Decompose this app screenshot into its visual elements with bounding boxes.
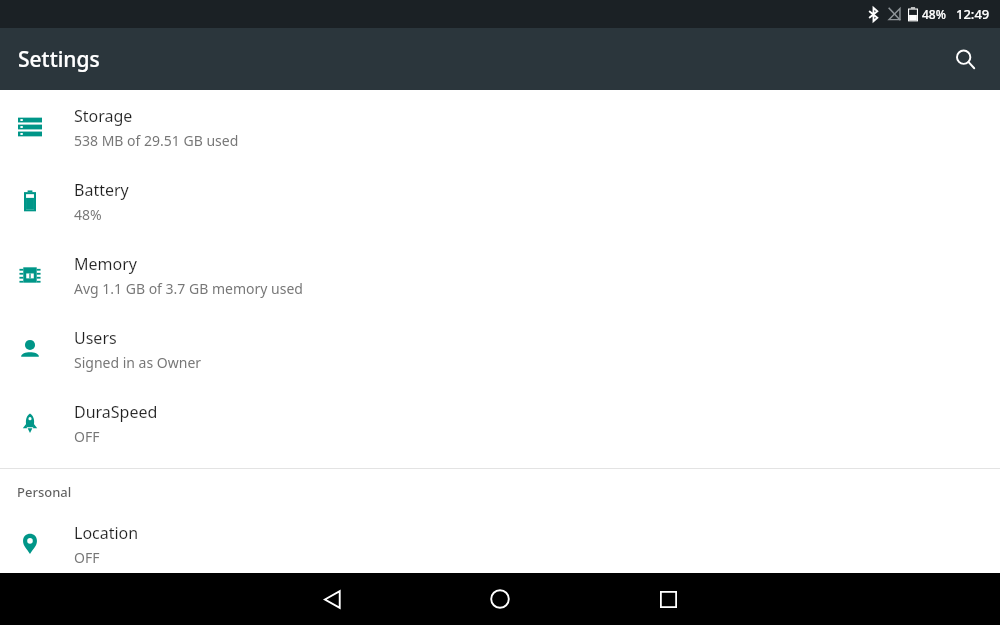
staticText: Memory (74, 253, 137, 275)
button[interactable]: Battery (0, 164, 1000, 238)
staticText: Location (74, 522, 139, 544)
staticText: Settings (18, 45, 100, 74)
button[interactable]: DuraSpeed (0, 386, 1000, 460)
staticText: Storage (74, 105, 133, 127)
button[interactable]: Home (473, 573, 527, 625)
staticText: 12:49 (956, 5, 990, 23)
button[interactable]: Search (942, 36, 988, 82)
button[interactable]: Memory (0, 238, 1000, 312)
staticText: 48% (74, 205, 102, 224)
staticText: 48% (922, 6, 946, 22)
staticText: Users (74, 327, 117, 349)
staticText: OFF (74, 548, 100, 567)
button[interactable]: Back (305, 573, 359, 625)
staticText: 538 MB of 29.51 GB used (74, 131, 239, 150)
staticText: Avg 1.1 GB of 3.7 GB memory used (74, 279, 303, 298)
button[interactable]: Location (0, 515, 1000, 573)
staticText: Battery (74, 179, 129, 201)
button[interactable]: Storage (0, 90, 1000, 164)
staticText: Signed in as Owner (74, 353, 202, 372)
button[interactable]: Users (0, 312, 1000, 386)
staticText: DuraSpeed (74, 401, 158, 423)
staticText: OFF (74, 427, 100, 446)
button[interactable]: Recents (641, 573, 695, 625)
staticText: Personal (17, 483, 72, 501)
